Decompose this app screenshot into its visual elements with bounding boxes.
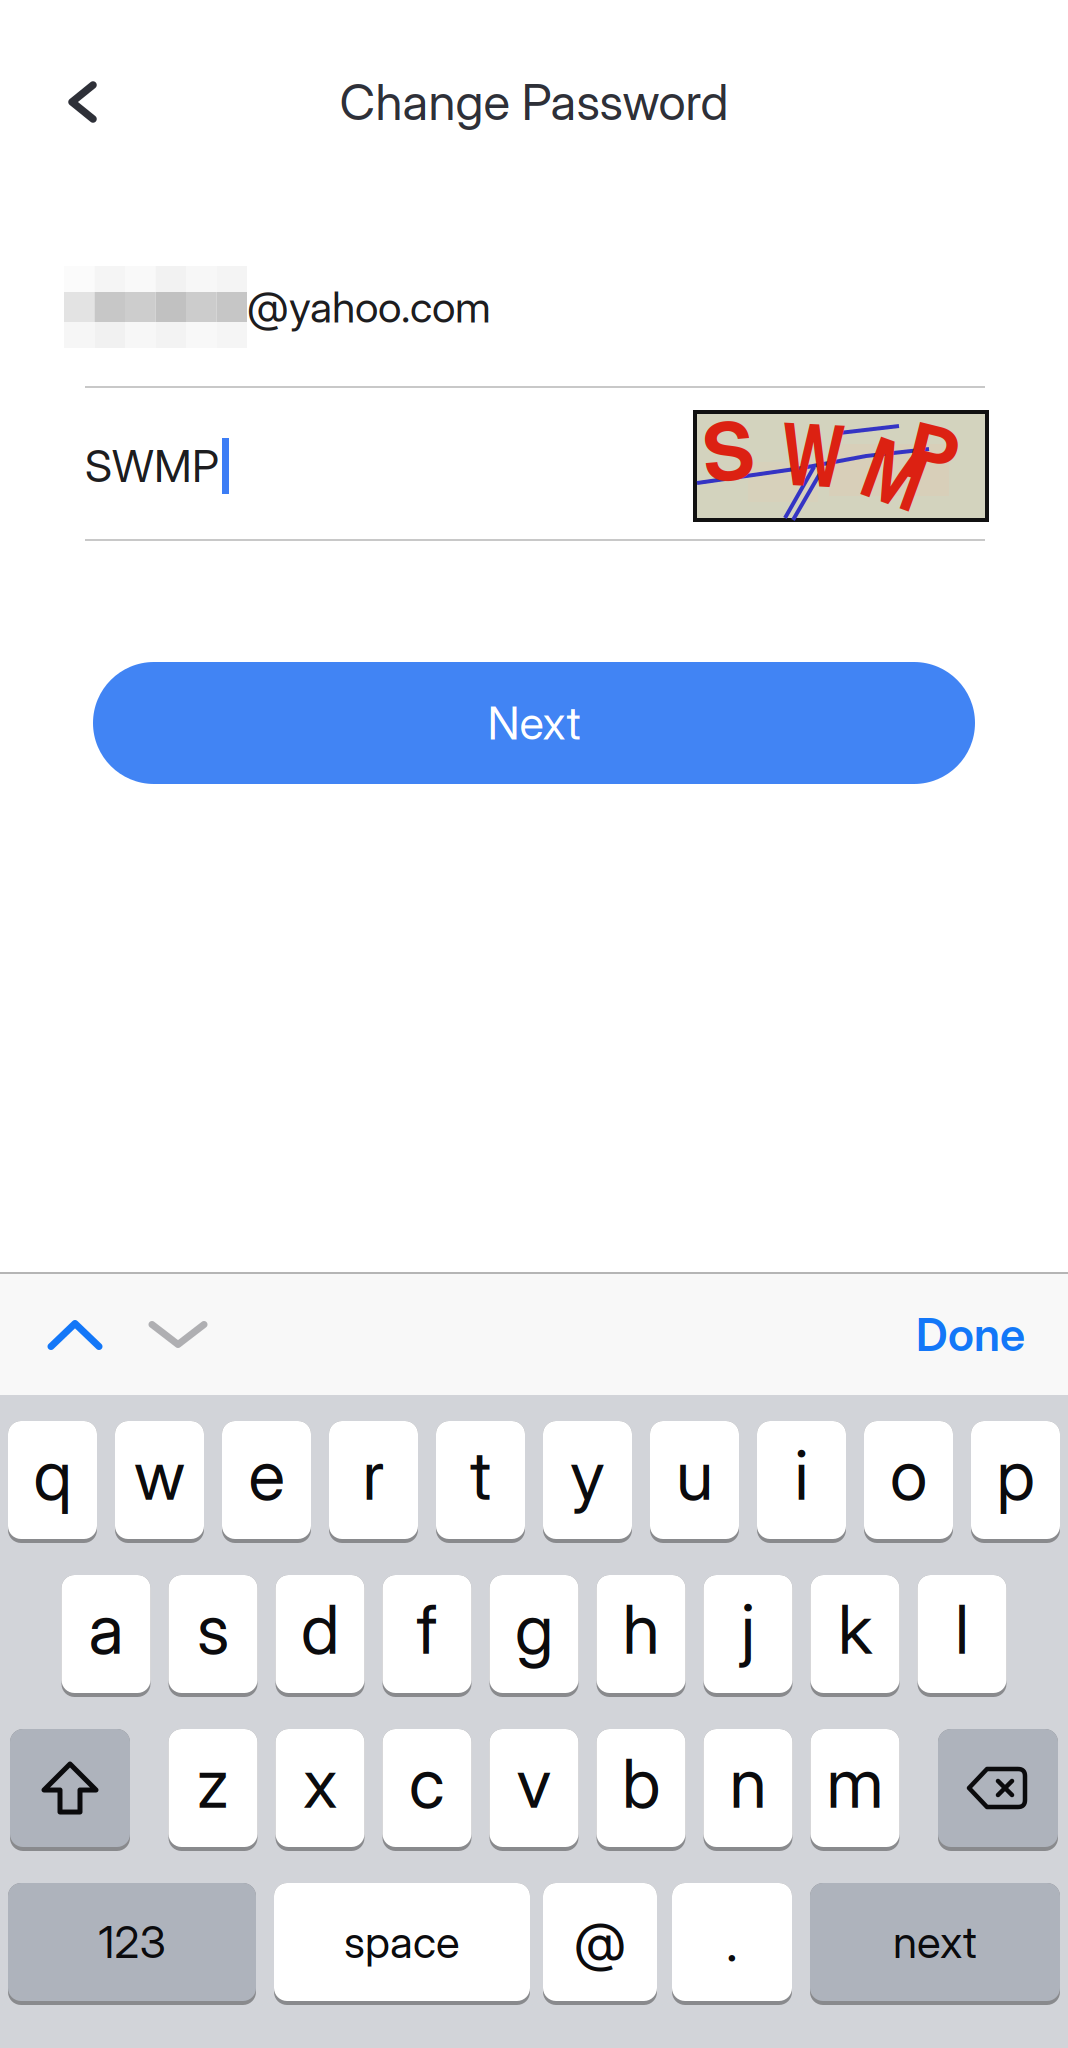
- button[interactable]: w: [115, 1421, 204, 1543]
- staticText: SWMP: [85, 440, 219, 492]
- button[interactable]: i: [757, 1421, 846, 1543]
- staticText: P: [908, 408, 957, 500]
- staticText: 123: [98, 1916, 165, 1968]
- button[interactable]: Back: [0, 82, 117, 122]
- button[interactable]: next: [810, 1883, 1060, 2005]
- button[interactable]: Next: [93, 662, 975, 784]
- button[interactable]: j: [703, 1575, 792, 1697]
- staticText: o: [890, 1435, 927, 1515]
- button[interactable]: q: [8, 1421, 97, 1543]
- button[interactable]: o: [864, 1421, 953, 1543]
- button[interactable]: Next field: [102, 1321, 207, 1347]
- staticText: h: [622, 1589, 659, 1669]
- button[interactable]: u: [650, 1421, 739, 1543]
- staticText: b: [622, 1743, 660, 1823]
- button[interactable]: d: [275, 1575, 364, 1697]
- staticText: space: [344, 1916, 460, 1968]
- staticText: p: [996, 1435, 1034, 1515]
- button[interactable]: space: [274, 1883, 530, 2005]
- staticText: S: [702, 404, 754, 498]
- staticText: Done: [916, 1308, 1025, 1361]
- staticText: @yahoo.com: [247, 282, 491, 332]
- button[interactable]: .: [672, 1883, 792, 2005]
- button[interactable]: m: [810, 1729, 899, 1851]
- button[interactable]: @: [543, 1883, 657, 2005]
- staticText: r: [362, 1435, 384, 1515]
- staticText: w: [134, 1435, 185, 1515]
- button[interactable]: e: [222, 1421, 311, 1543]
- button[interactable]: h: [596, 1575, 685, 1697]
- staticText: u: [676, 1435, 713, 1515]
- button[interactable]: v: [489, 1729, 578, 1851]
- button[interactable]: n: [703, 1729, 792, 1851]
- staticText: n: [729, 1743, 766, 1823]
- staticText: a: [88, 1589, 123, 1669]
- staticText: s: [197, 1589, 229, 1669]
- staticText: c: [409, 1743, 445, 1823]
- button[interactable]: Shift: [10, 1729, 130, 1851]
- button[interactable]: Done: [916, 1308, 1068, 1361]
- button[interactable]: p: [971, 1421, 1060, 1543]
- staticText: y: [570, 1435, 605, 1515]
- staticText: f: [416, 1589, 437, 1669]
- staticText: i: [794, 1435, 808, 1515]
- staticText: q: [33, 1435, 71, 1515]
- staticText: k: [838, 1589, 872, 1669]
- staticText: j: [741, 1589, 755, 1669]
- button[interactable]: Delete: [938, 1729, 1058, 1851]
- staticText: M: [857, 424, 932, 524]
- staticText: g: [515, 1589, 553, 1669]
- staticText: z: [196, 1743, 229, 1823]
- button[interactable]: s: [168, 1575, 257, 1697]
- button[interactable]: l: [917, 1575, 1006, 1697]
- button[interactable]: z: [168, 1729, 257, 1851]
- button[interactable]: b: [596, 1729, 685, 1851]
- button[interactable]: 123: [8, 1883, 256, 2005]
- button[interactable]: k: [810, 1575, 899, 1697]
- staticText: next: [893, 1916, 977, 1968]
- staticText: m: [826, 1743, 883, 1823]
- staticText: e: [248, 1435, 284, 1515]
- staticText: Next: [487, 696, 580, 750]
- staticText: d: [301, 1589, 339, 1669]
- staticText: x: [303, 1743, 337, 1823]
- staticText: l: [955, 1589, 969, 1669]
- staticText: t: [470, 1435, 491, 1515]
- button[interactable]: x: [275, 1729, 364, 1851]
- button[interactable]: f: [382, 1575, 471, 1697]
- button[interactable]: c: [382, 1729, 471, 1851]
- staticText: @: [574, 1910, 626, 1973]
- button[interactable]: a: [61, 1575, 150, 1697]
- button[interactable]: r: [329, 1421, 418, 1543]
- staticText: Change Password: [339, 73, 728, 131]
- staticText: .: [726, 1910, 738, 1973]
- button[interactable]: g: [489, 1575, 578, 1697]
- staticText: v: [516, 1743, 551, 1823]
- button[interactable]: t: [436, 1421, 525, 1543]
- button[interactable]: Previous field: [0, 1319, 102, 1349]
- staticText: W: [770, 405, 855, 505]
- button[interactable]: y: [543, 1421, 632, 1543]
